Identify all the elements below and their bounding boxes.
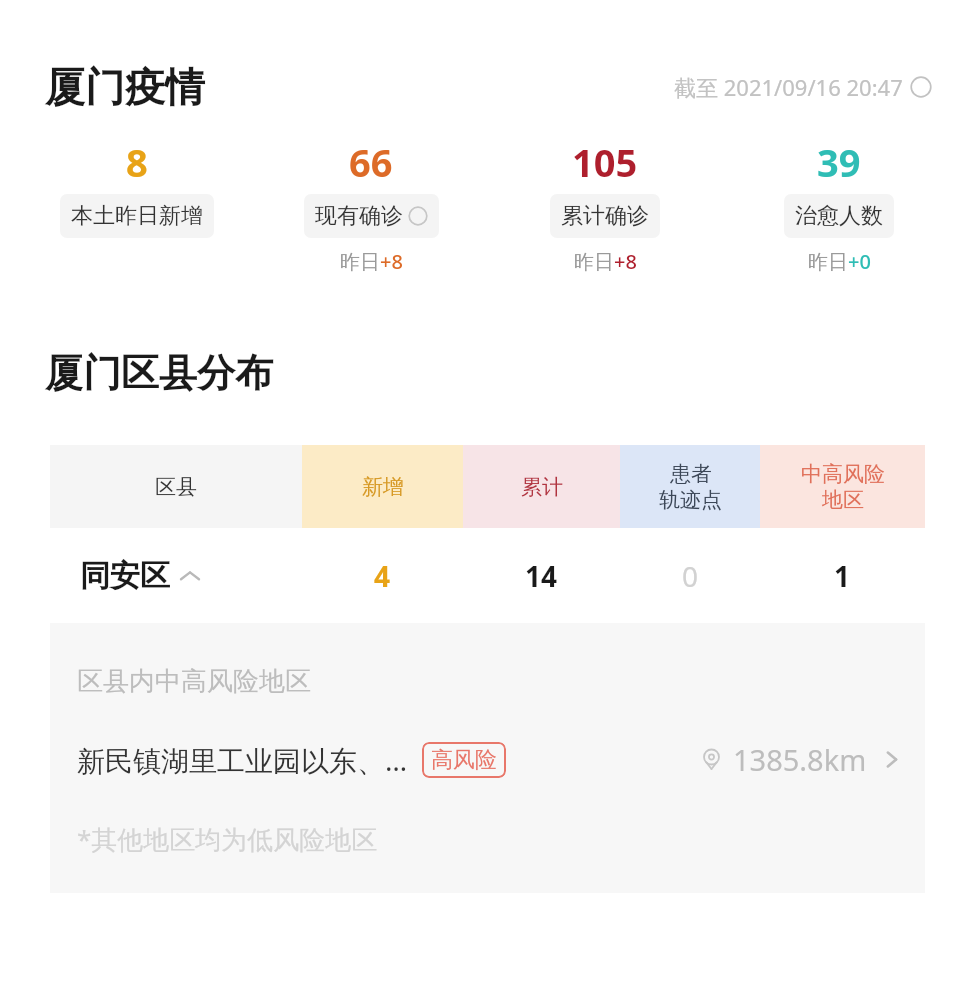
staticText: 同安区: [80, 557, 170, 595]
staticText: 地区: [822, 487, 864, 513]
staticText: 0: [682, 557, 699, 595]
button[interactable]: 105: [488, 136, 722, 275]
staticText: 昨日+8: [574, 248, 637, 275]
staticText: *其他地区均为低风险地区: [77, 821, 378, 857]
staticText: 105: [572, 136, 638, 188]
staticText: 轨迹点: [659, 487, 722, 513]
staticText: 区县: [155, 474, 197, 500]
staticText: 区县内中高风险地区: [77, 665, 311, 698]
staticText: 高风险: [431, 746, 497, 774]
staticText: 厦门疫情: [45, 62, 205, 112]
staticText: 1: [834, 557, 851, 595]
staticText: 治愈人数: [795, 202, 883, 230]
staticText: 39: [817, 136, 861, 188]
staticText: 1385.8km: [733, 740, 867, 779]
staticText: 昨日+0: [808, 248, 871, 275]
staticText: 新民镇湖里工业园以东、…: [77, 741, 408, 779]
button[interactable]: 39: [722, 136, 956, 275]
button[interactable]: 截至 2021/09/16 20:47: [674, 72, 932, 102]
staticText: 厦门区县分布: [45, 349, 273, 397]
button[interactable]: 同安区: [50, 528, 925, 623]
staticText: 66: [349, 136, 393, 188]
staticText: 14: [525, 557, 558, 595]
staticText: 本土昨日新增: [71, 202, 203, 230]
staticText: 患者: [670, 461, 712, 487]
staticText: 截至 2021/09/16 20:47: [674, 72, 903, 102]
staticText: 现有确诊: [315, 202, 403, 230]
staticText: 累计: [521, 474, 563, 500]
button[interactable]: 66: [254, 136, 488, 275]
button[interactable]: 新民镇湖里工业园以东、…: [50, 740, 925, 779]
button[interactable]: 8: [20, 136, 254, 238]
staticText: 8: [126, 136, 148, 188]
staticText: 新增: [362, 474, 404, 500]
staticText: 累计确诊: [561, 202, 649, 230]
staticText: 4: [374, 557, 391, 595]
staticText: 昨日+8: [340, 248, 403, 275]
staticText: 中高风险: [801, 461, 885, 487]
